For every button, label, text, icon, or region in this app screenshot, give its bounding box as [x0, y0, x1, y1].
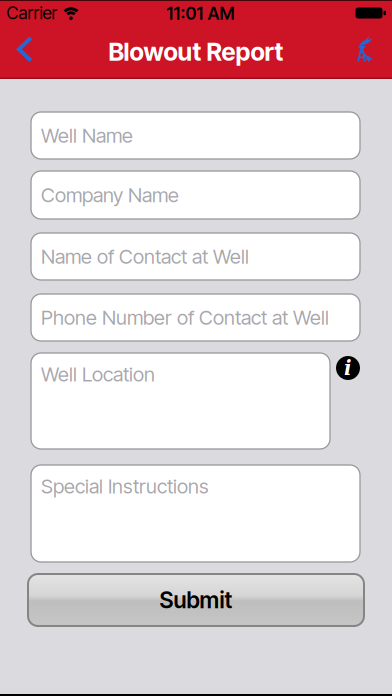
staticText: Name of Contact at Well	[41, 244, 249, 269]
button[interactable]: Phone Number of Contact at Well	[31, 294, 360, 341]
staticText: Carrier	[6, 2, 57, 23]
staticText: Special Instructions	[41, 474, 209, 498]
button[interactable]: About Well Location	[336, 356, 360, 380]
button[interactable]: Submit	[28, 574, 364, 626]
button[interactable]: Back	[0, 39, 42, 64]
staticText: Well Location	[41, 362, 155, 386]
staticText: Submit	[159, 586, 232, 614]
button[interactable]: Company Name	[31, 171, 360, 219]
staticText: Phone Number of Contact at Well	[41, 305, 329, 330]
button[interactable]: Special Instructions	[31, 465, 360, 562]
staticText: Blowout Report	[108, 37, 283, 67]
staticText: Company Name	[41, 183, 179, 207]
staticText: Well Name	[41, 123, 133, 148]
button[interactable]: Blowout info	[348, 38, 392, 66]
button[interactable]: Well Location	[31, 353, 330, 449]
button[interactable]: Well Name	[31, 112, 360, 159]
button[interactable]: Name of Contact at Well	[31, 233, 360, 280]
staticText: i	[344, 356, 352, 380]
staticText: 11:01 AM	[166, 3, 234, 24]
